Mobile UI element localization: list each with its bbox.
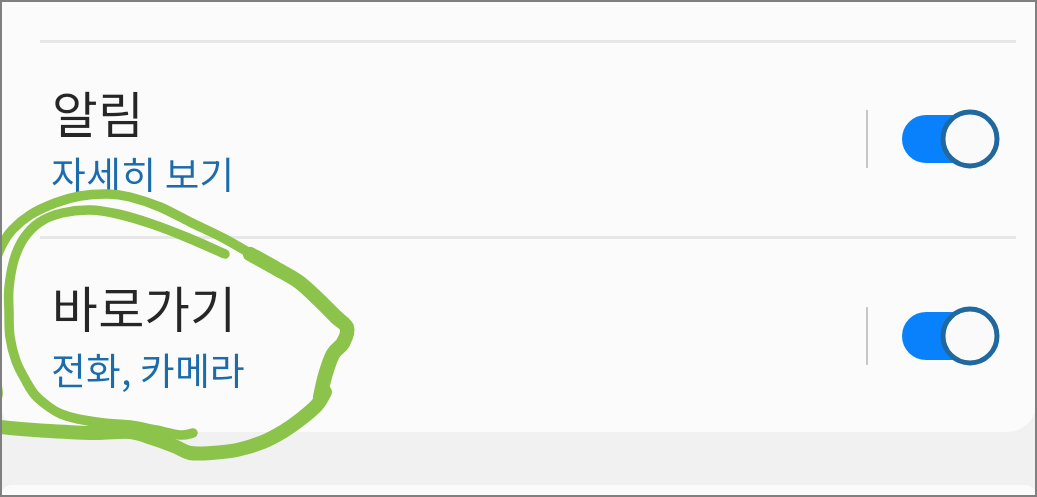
staticText: 바로가기 [52, 270, 236, 342]
staticText: 자세히 보기 [51, 145, 235, 200]
button[interactable]: Toggle on [902, 109, 998, 169]
button[interactable]: Toggle on [902, 306, 998, 366]
staticText: 알림 [52, 75, 144, 147]
button[interactable]: 알림 [0, 42, 1037, 236]
button[interactable]: 바로가기 [0, 239, 1037, 432]
staticText: 전화, 카메라 [51, 341, 245, 396]
